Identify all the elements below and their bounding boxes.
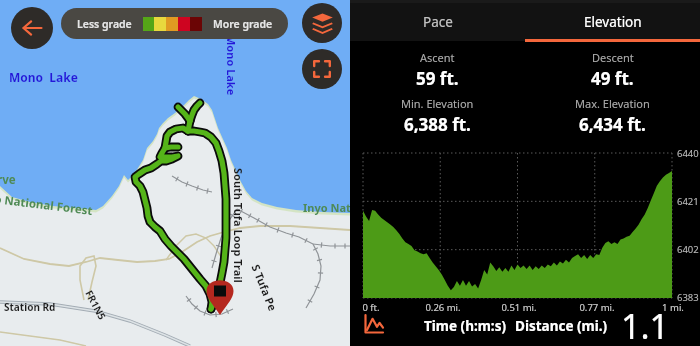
staticText: 6421 xyxy=(677,195,699,208)
staticText: Descent xyxy=(592,50,634,65)
button[interactable]: Chart xyxy=(361,312,385,336)
staticText: 1 mi. xyxy=(647,301,699,314)
button[interactable]: Map layers xyxy=(302,3,342,43)
staticText: 0.77 mi. xyxy=(571,301,623,314)
staticText: 0.51 mi. xyxy=(493,301,545,314)
staticText: FR1N5 xyxy=(82,288,110,322)
staticText: rve xyxy=(0,172,16,188)
staticText: Mono Lake xyxy=(9,69,78,85)
button[interactable]: Pace xyxy=(350,3,525,41)
staticText: o National Forest xyxy=(0,191,94,219)
button[interactable]: Elevation xyxy=(525,3,700,41)
staticText: Min. Elevation xyxy=(401,96,474,111)
staticText: Max. Elevation xyxy=(575,96,650,111)
staticText: Elevation xyxy=(584,13,642,31)
staticText: 0 ft. xyxy=(345,301,397,314)
staticText: Less grade xyxy=(77,17,132,31)
button[interactable]: Fullscreen xyxy=(302,49,342,89)
staticText: S Tufa Pe xyxy=(248,262,281,313)
staticText: Pace xyxy=(423,13,453,31)
staticText: 49 ft. xyxy=(591,67,634,90)
staticText: 6402 xyxy=(677,243,699,256)
staticText: Distance (mi.) xyxy=(515,317,608,335)
staticText: Station Rd xyxy=(4,300,56,314)
staticText: Mono Lake xyxy=(224,35,239,96)
button[interactable]: Less grade xyxy=(61,8,288,39)
staticText: 6383 xyxy=(677,291,699,304)
staticText: 6440 xyxy=(677,147,699,160)
staticText: More grade xyxy=(213,17,273,31)
staticText: 59 ft. xyxy=(416,67,459,90)
staticText: 0.26 mi. xyxy=(417,301,469,314)
staticText: 6,388 ft. xyxy=(404,113,471,136)
staticText: Time (h:m:s) xyxy=(424,317,507,335)
staticText: 6,434 ft. xyxy=(579,113,646,136)
staticText: Ascent xyxy=(420,50,455,65)
staticText: 1.1 xyxy=(621,303,670,346)
staticText: Inyo Nat xyxy=(303,200,351,215)
button[interactable]: Back xyxy=(11,7,53,49)
staticText: South Tufa Loop Trail xyxy=(231,168,246,283)
